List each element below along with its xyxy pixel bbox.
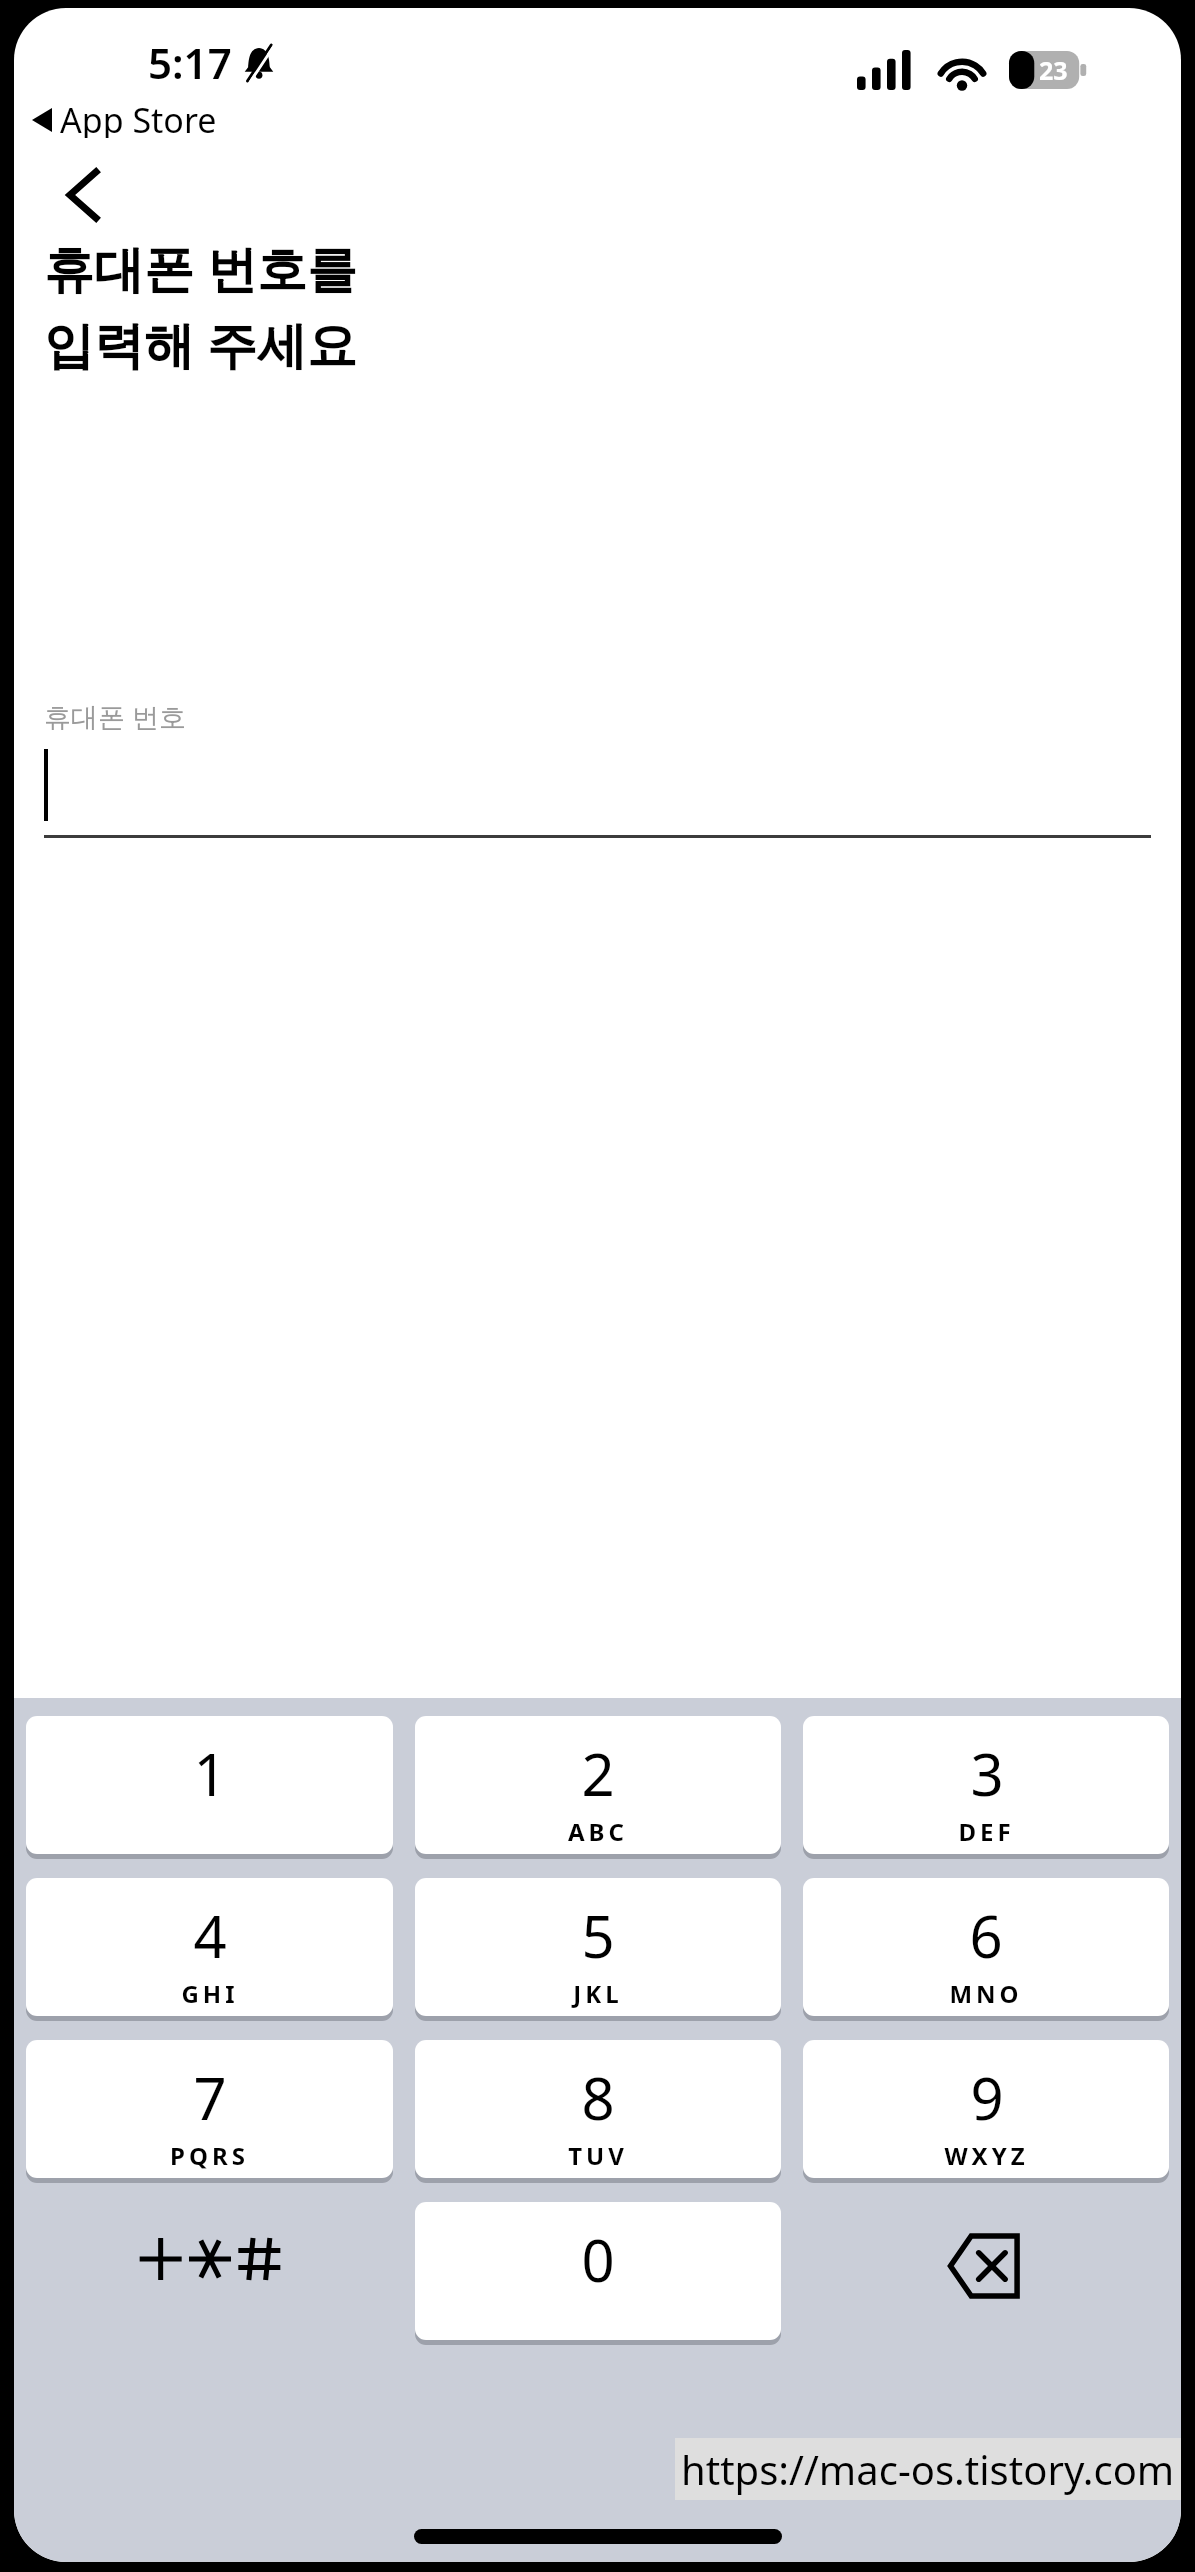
staticText: 3 <box>970 1734 1004 1813</box>
staticText: 5 <box>581 1896 615 1975</box>
button[interactable]: 7 <box>26 2040 393 2178</box>
staticText: DEF <box>958 1815 1015 1848</box>
staticText: 7 <box>193 2058 227 2137</box>
staticText: 8 <box>581 2058 615 2137</box>
staticText: TUV <box>568 2139 628 2172</box>
staticText: 휴대폰 번호 <box>44 698 187 735</box>
button[interactable]: Back <box>48 160 118 230</box>
button[interactable]: 9 <box>803 2040 1169 2178</box>
button[interactable]: 1 <box>26 1716 393 1854</box>
button[interactable]: 8 <box>415 2040 781 2178</box>
button[interactable]: 3 <box>803 1716 1169 1854</box>
staticText: 1 <box>193 1734 227 1813</box>
staticText: 4 <box>193 1896 227 1975</box>
staticText: 23 <box>1039 53 1068 87</box>
staticText: 입력해 주세요 <box>44 310 357 378</box>
staticText: 9 <box>970 2058 1004 2137</box>
staticText: GHI <box>181 1977 239 2010</box>
staticText: 6 <box>969 1896 1003 1975</box>
staticText: JKL <box>573 1977 623 2010</box>
staticText: 휴대폰 번호를 <box>44 234 357 302</box>
staticText: PQRS <box>170 2139 249 2172</box>
staticText: ABC <box>568 1815 628 1848</box>
staticText: MNO <box>949 1977 1023 2010</box>
button[interactable]: 2 <box>415 1716 781 1854</box>
button[interactable]: 5 <box>415 1878 781 2016</box>
button[interactable]: Plus star hash <box>26 2202 393 2342</box>
button[interactable]: 6 <box>803 1878 1169 2016</box>
staticText: https://mac-os.tistory.com <box>681 2442 1175 2496</box>
staticText: WXYZ <box>944 2139 1029 2172</box>
button[interactable]: 0 <box>415 2202 781 2340</box>
staticText: 2 <box>581 1734 615 1813</box>
button[interactable]: 4 <box>26 1878 393 2016</box>
staticText: 5:17 <box>148 34 232 91</box>
staticText: App Store <box>60 97 217 143</box>
button[interactable]: 휴대폰 번호 <box>44 698 1151 838</box>
button[interactable]: Backspace <box>803 2202 1169 2342</box>
staticText: 0 <box>581 2220 615 2299</box>
